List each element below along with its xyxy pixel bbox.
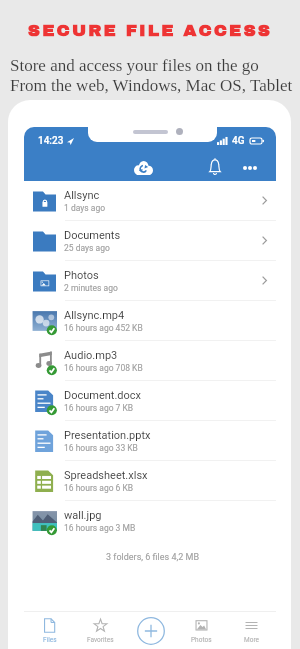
staticText: Audio.mp3 — [64, 349, 118, 362]
staticText: 16 hours ago 6 KB — [64, 483, 134, 493]
button[interactable]: Sync — [130, 155, 156, 181]
staticText: 1 days ago — [64, 203, 106, 213]
staticText: wall.jpg — [64, 509, 102, 522]
staticText: SECURE FILE ACCESS — [0, 21, 300, 39]
staticText: Allsync.mp4 — [64, 309, 125, 322]
staticText: 3 folders, 6 files 4,2 MB — [29, 552, 276, 563]
button[interactable]: More options — [237, 155, 263, 181]
staticText: 16 hours ago 7 KB — [64, 403, 134, 413]
staticText: More — [244, 636, 259, 644]
staticText: Store and access your files on the go Fr… — [10, 56, 293, 95]
staticText: 16 hours ago 3 MB — [64, 523, 136, 533]
button[interactable]: Add — [126, 612, 176, 649]
button[interactable]: Photos — [176, 612, 226, 649]
staticText: Allsync — [64, 189, 100, 202]
button[interactable]: wall.jpg — [24, 501, 276, 540]
staticText: 14:23 — [38, 135, 64, 147]
button[interactable]: Notifications — [202, 153, 228, 179]
staticText: Documents — [64, 229, 121, 242]
button[interactable]: More — [226, 612, 276, 649]
staticText: Favorites — [87, 636, 114, 644]
staticText: Photos — [191, 636, 212, 644]
button[interactable]: Presentation.pptx — [24, 421, 276, 461]
staticText: Files — [43, 636, 57, 644]
staticText: 16 hours ago 708 KB — [64, 363, 143, 373]
staticText: 16 hours ago 33 KB — [64, 443, 138, 453]
staticText: 4G — [232, 135, 245, 147]
button[interactable]: Allsync — [24, 181, 276, 221]
staticText: Spreadsheet.xlsx — [64, 469, 148, 482]
staticText: Photos — [64, 269, 99, 282]
button[interactable]: Files — [24, 612, 75, 649]
button[interactable]: Favorites — [75, 612, 126, 649]
staticText: Document.docx — [64, 389, 142, 402]
button[interactable]: Document.docx — [24, 381, 276, 421]
button[interactable]: Documents — [24, 221, 276, 261]
staticText: Presentation.pptx — [64, 429, 151, 442]
button[interactable]: Photos — [24, 261, 276, 301]
staticText: 16 hours ago 452 KB — [64, 323, 143, 333]
staticText: 2 minutes ago — [64, 283, 118, 293]
button[interactable]: Spreadsheet.xlsx — [24, 461, 276, 501]
staticText: 25 days ago — [64, 243, 110, 253]
button[interactable]: Allsync.mp4 — [24, 301, 276, 341]
button[interactable]: Audio.mp3 — [24, 341, 276, 381]
